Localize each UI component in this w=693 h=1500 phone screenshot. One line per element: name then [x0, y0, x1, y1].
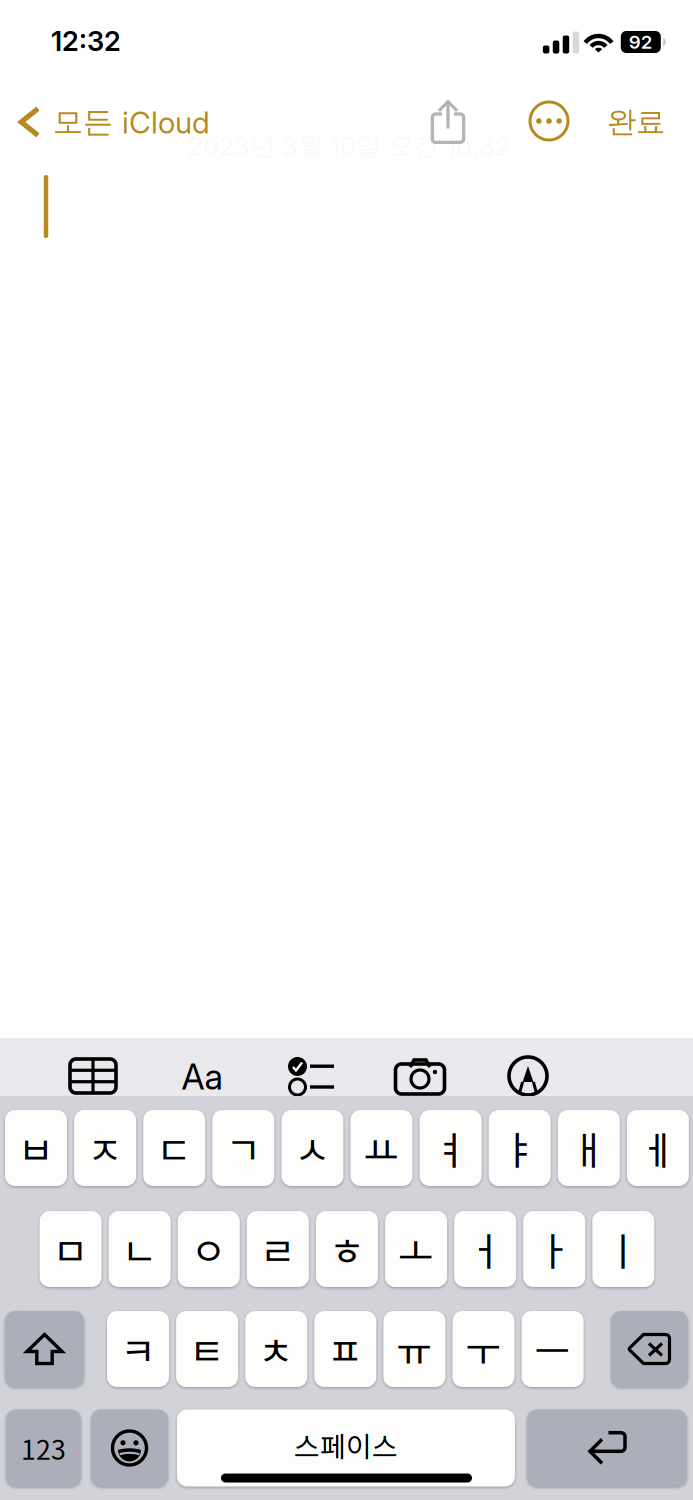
button[interactable]: ㅛ	[350, 1110, 412, 1186]
staticText: ㅁ	[52, 1221, 88, 1277]
staticText: 2023년 3월 10일 오전 10:32	[188, 130, 510, 162]
button[interactable]: ㅣ	[592, 1211, 654, 1287]
button[interactable]: ㅅ	[281, 1110, 343, 1186]
staticText: ㅐ	[571, 1120, 607, 1176]
button[interactable]: Return	[527, 1409, 687, 1486]
button[interactable]: ㅔ	[627, 1110, 689, 1186]
button[interactable]: Markup	[492, 1047, 564, 1105]
button[interactable]: ㅍ	[314, 1311, 376, 1387]
button[interactable]: ㅏ	[523, 1211, 585, 1287]
button[interactable]: 모든 iCloud	[4, 94, 224, 150]
staticText: ㅔ	[640, 1120, 676, 1176]
button[interactable]: Camera	[384, 1047, 456, 1105]
staticText: 92	[629, 31, 653, 53]
button[interactable]: ㅌ	[176, 1311, 238, 1387]
button[interactable]: More	[517, 93, 581, 149]
button[interactable]: ㅊ	[245, 1311, 307, 1387]
staticText: 123	[21, 1429, 66, 1467]
staticText: ㅛ	[363, 1120, 399, 1176]
button[interactable]: ㅈ	[74, 1110, 136, 1186]
staticText: ㅍ	[327, 1321, 363, 1377]
staticText: ㄹ	[260, 1221, 296, 1277]
staticText: ㅓ	[467, 1221, 503, 1277]
button[interactable]: Shift	[5, 1311, 84, 1387]
staticText: 모든 iCloud	[53, 103, 210, 141]
button[interactable]: ㄴ	[109, 1211, 171, 1287]
button[interactable]: Checklist	[275, 1047, 347, 1105]
button[interactable]: ㄱ	[212, 1110, 274, 1186]
staticText: ㅌ	[189, 1321, 225, 1377]
button[interactable]: 스페이스	[177, 1409, 515, 1486]
staticText: ㅇ	[191, 1221, 227, 1277]
staticText: ㅂ	[18, 1120, 54, 1176]
staticText: ㅗ	[398, 1221, 434, 1277]
button[interactable]: ㅁ	[39, 1211, 101, 1287]
staticText: ㅎ	[329, 1221, 365, 1277]
staticText: 완료	[607, 103, 665, 140]
staticText: ㅣ	[605, 1221, 641, 1277]
staticText: ㅠ	[396, 1321, 432, 1377]
button[interactable]: ㅠ	[383, 1311, 445, 1387]
button[interactable]: Delete	[611, 1311, 688, 1387]
staticText: ㅈ	[87, 1120, 123, 1176]
button[interactable]: Share	[413, 94, 483, 150]
button[interactable]: ㅑ	[489, 1110, 551, 1186]
staticText: 12:32	[51, 24, 121, 58]
staticText: ㄴ	[122, 1221, 158, 1277]
button[interactable]: ㅂ	[5, 1110, 67, 1186]
button[interactable]: Table	[57, 1047, 129, 1105]
staticText: Aa	[181, 1056, 222, 1098]
button[interactable]: ㅎ	[316, 1211, 378, 1287]
button[interactable]: ㅜ	[452, 1311, 514, 1387]
staticText: ㅊ	[258, 1321, 294, 1377]
button[interactable]: ㅋ	[107, 1311, 169, 1387]
staticText: ㅜ	[465, 1321, 501, 1377]
staticText: ㄱ	[225, 1120, 261, 1176]
button[interactable]: ㅗ	[385, 1211, 447, 1287]
button[interactable]: ㅐ	[558, 1110, 620, 1186]
staticText: ㅕ	[433, 1120, 469, 1176]
button[interactable]: 123	[6, 1409, 81, 1486]
button[interactable]: 완료	[598, 94, 674, 150]
staticText: ㅋ	[120, 1321, 156, 1377]
button[interactable]: ㅡ	[522, 1311, 584, 1387]
button[interactable]: ㄷ	[143, 1110, 205, 1186]
staticText: 스페이스	[294, 1425, 398, 1465]
button[interactable]: Emoji	[91, 1409, 168, 1486]
button[interactable]: ㅇ	[178, 1211, 240, 1287]
staticText: ㅑ	[502, 1120, 538, 1176]
staticText: ㅅ	[294, 1120, 330, 1176]
staticText: ㄷ	[156, 1120, 192, 1176]
staticText: ㅏ	[536, 1221, 572, 1277]
button[interactable]: ㄹ	[247, 1211, 309, 1287]
button[interactable]: ㅓ	[454, 1211, 516, 1287]
button[interactable]: Format	[166, 1048, 238, 1106]
staticText: ㅡ	[535, 1321, 571, 1377]
button[interactable]: ㅕ	[420, 1110, 482, 1186]
